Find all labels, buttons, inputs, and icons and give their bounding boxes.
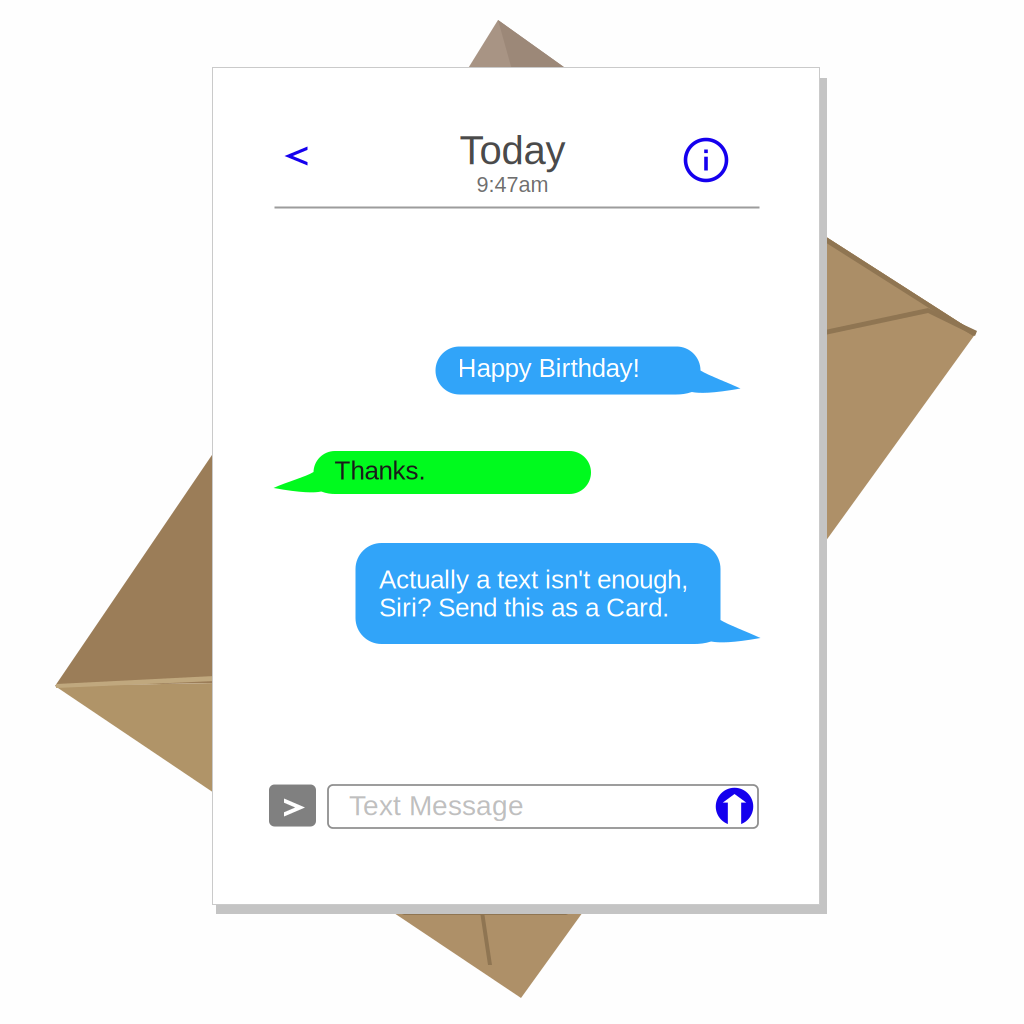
button[interactable]: Text Message bbox=[328, 785, 758, 828]
staticText: 9:47am bbox=[476, 172, 548, 196]
staticText: Text Message bbox=[349, 790, 524, 821]
button[interactable]: Send as Card bbox=[712, 784, 756, 828]
button[interactable]: Details bbox=[677, 131, 735, 189]
staticText: Actually a text isn't enough, bbox=[379, 565, 688, 594]
staticText: Siri? Send this as a Card. bbox=[379, 593, 669, 622]
button[interactable]: Back bbox=[266, 128, 325, 183]
staticText: Thanks. bbox=[334, 456, 425, 485]
button[interactable]: Send bbox=[269, 784, 316, 826]
staticText: Happy Birthday! bbox=[457, 353, 639, 382]
staticText: Today bbox=[459, 128, 565, 173]
